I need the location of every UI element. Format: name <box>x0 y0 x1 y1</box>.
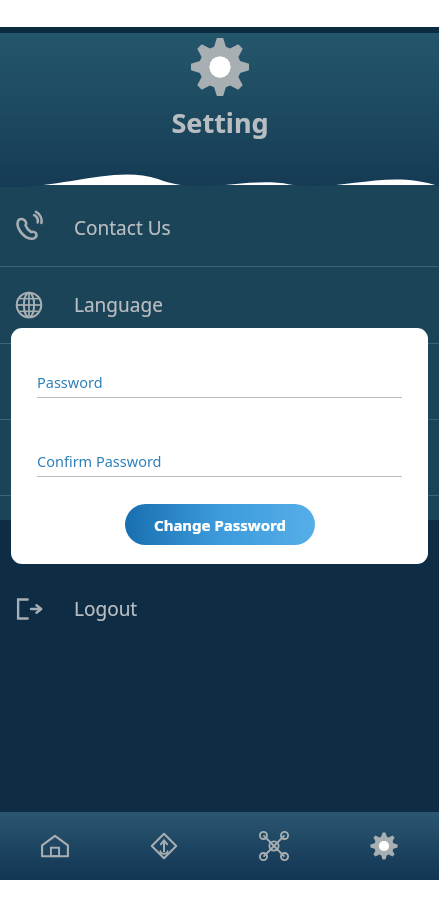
staticText: Password <box>37 372 103 392</box>
button[interactable]: Logout <box>0 578 439 640</box>
staticText: Confirm Password <box>37 451 162 471</box>
button[interactable]: Contact Us <box>0 197 439 259</box>
staticText: Contact Us <box>74 215 171 241</box>
button[interactable]: Confirm Password <box>37 451 402 477</box>
button[interactable]: Home <box>0 812 109 880</box>
staticText: Change Password <box>154 515 286 535</box>
button[interactable]: Change Password <box>125 504 315 545</box>
button[interactable]: Network <box>219 812 329 880</box>
button[interactable]: Password <box>37 372 402 398</box>
staticText: Language <box>74 292 163 318</box>
button[interactable]: Upload <box>109 812 219 880</box>
button[interactable]: Settings <box>329 812 439 880</box>
button[interactable]: Language <box>0 274 439 336</box>
staticText: Logout <box>74 596 138 622</box>
staticText: Setting <box>171 104 269 141</box>
